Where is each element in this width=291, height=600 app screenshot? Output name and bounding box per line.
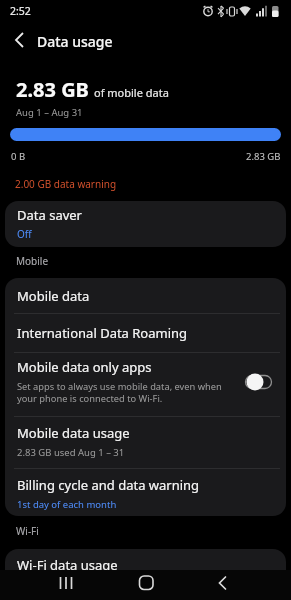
staticText: Off — [17, 227, 32, 241]
button[interactable] — [8, 28, 34, 52]
staticText: Wi-Fi — [16, 524, 39, 538]
staticText: Mobile — [16, 254, 49, 268]
button[interactable]: Mobile data only apps — [5, 353, 286, 416]
button[interactable] — [210, 570, 238, 600]
staticText: International Data Roaming — [17, 324, 188, 342]
button[interactable]: Data saver — [5, 201, 286, 247]
staticText: 2.00 GB data warning — [15, 177, 117, 191]
staticText: of mobile data — [94, 85, 169, 100]
button[interactable] — [52, 570, 80, 600]
staticText: Mobile data usage — [17, 424, 130, 442]
staticText: Mobile data — [17, 287, 90, 305]
staticText: Aug 1 – Aug 31 — [16, 106, 83, 119]
button[interactable]: Wi-Fi data usage — [5, 549, 286, 600]
staticText: 2.83 GB — [16, 76, 89, 103]
button[interactable]: Billing cycle and data warning — [5, 469, 286, 516]
staticText: 0 B — [11, 150, 26, 163]
staticText: 1st day of each month — [17, 498, 117, 511]
staticText: Mobile data only apps — [17, 358, 152, 376]
staticText: 2:52 — [10, 4, 31, 18]
button[interactable]: Mobile data usage — [5, 417, 286, 468]
staticText: Data saver — [17, 206, 82, 224]
staticText: Billing cycle and data warning — [17, 476, 200, 494]
staticText: 2.83 GB used Aug 1 – 31 — [17, 446, 125, 459]
button[interactable] — [132, 570, 160, 600]
button[interactable]: International Data Roaming — [5, 314, 286, 352]
button[interactable]: Mobile data — [5, 278, 286, 313]
button[interactable] — [242, 372, 272, 392]
staticText: Set apps to always use mobile data, even… — [17, 380, 222, 405]
staticText: 2.83 GB — [246, 150, 281, 163]
staticText: Data usage — [37, 32, 113, 51]
staticText: Wi-Fi data usage — [17, 556, 118, 574]
